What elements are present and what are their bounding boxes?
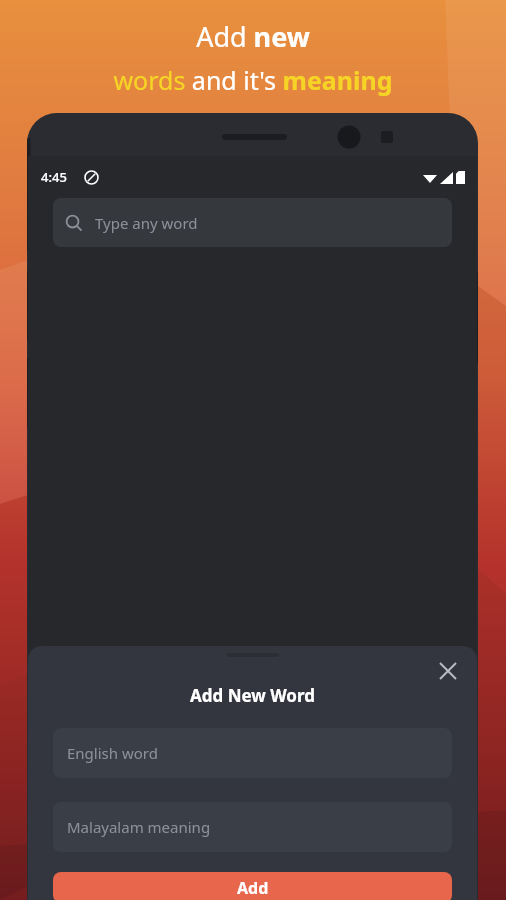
staticText: Malayalam meaning: [67, 817, 211, 837]
staticText: Add new: [196, 18, 310, 55]
button[interactable]: Add: [53, 872, 452, 900]
button[interactable]: Type any word: [53, 198, 452, 247]
staticText: Add: [237, 877, 269, 899]
staticText: words and it's meaning: [113, 63, 393, 97]
staticText: Add New Word: [190, 684, 316, 707]
staticText: 4:45: [41, 168, 67, 186]
button[interactable]: Close: [431, 654, 465, 688]
button[interactable]: English word: [53, 728, 452, 778]
staticText: Type any word: [95, 213, 198, 233]
button[interactable]: Malayalam meaning: [53, 802, 452, 852]
staticText: English word: [67, 743, 158, 763]
